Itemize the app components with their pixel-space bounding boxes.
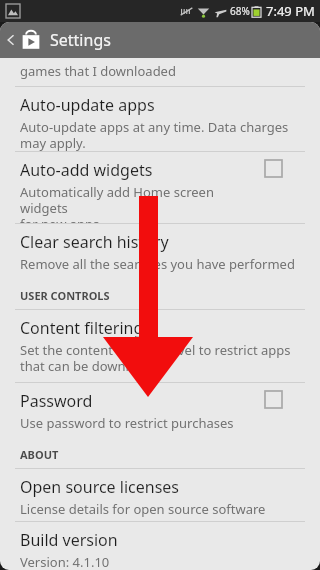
button[interactable]: Build version xyxy=(0,522,320,570)
staticText: Automatically add Home screen widgets fo… xyxy=(20,183,264,223)
staticText: Build version xyxy=(20,529,118,551)
button[interactable]: Toggle Auto-add widgets xyxy=(265,160,282,177)
staticText: Clear search history xyxy=(20,231,169,253)
staticText: Auto-add widgets xyxy=(20,159,153,181)
button[interactable]: Auto-add widgets xyxy=(0,152,320,223)
button[interactable]: Back xyxy=(4,33,18,47)
button[interactable]: Clear search history xyxy=(0,224,320,276)
staticText: Auto-update apps xyxy=(20,94,155,116)
staticText: Auto-update apps at any time. Data charg… xyxy=(20,118,289,151)
button[interactable]: Auto-update apps xyxy=(0,87,320,151)
staticText: Settings xyxy=(50,29,111,51)
button[interactable]: Toggle Password xyxy=(265,391,282,408)
staticText: Set the content filtering level to restr… xyxy=(20,341,291,374)
button[interactable]: Back xyxy=(0,22,320,58)
button[interactable]: Password xyxy=(0,383,320,435)
staticText: Content filtering xyxy=(20,317,144,339)
staticText: Version: 4.1.10 xyxy=(20,553,110,570)
staticText: Open source licenses xyxy=(20,476,179,498)
button[interactable]: Open source licenses xyxy=(0,469,320,521)
staticText: games that I downloaded xyxy=(20,62,176,80)
button[interactable]: games that I downloaded xyxy=(0,58,320,86)
staticText: Use password to restrict purchases xyxy=(20,414,234,432)
staticText: Password xyxy=(20,390,93,412)
staticText: Remove all the searches you have perform… xyxy=(20,255,295,273)
staticText: 68% xyxy=(230,4,250,18)
staticText: License details for open source software xyxy=(20,500,266,518)
staticText: 7:49 PM xyxy=(266,2,315,20)
button[interactable]: Content filtering xyxy=(0,310,320,382)
staticText: ABOUT xyxy=(20,447,59,462)
staticText: USER CONTROLS xyxy=(20,288,110,303)
